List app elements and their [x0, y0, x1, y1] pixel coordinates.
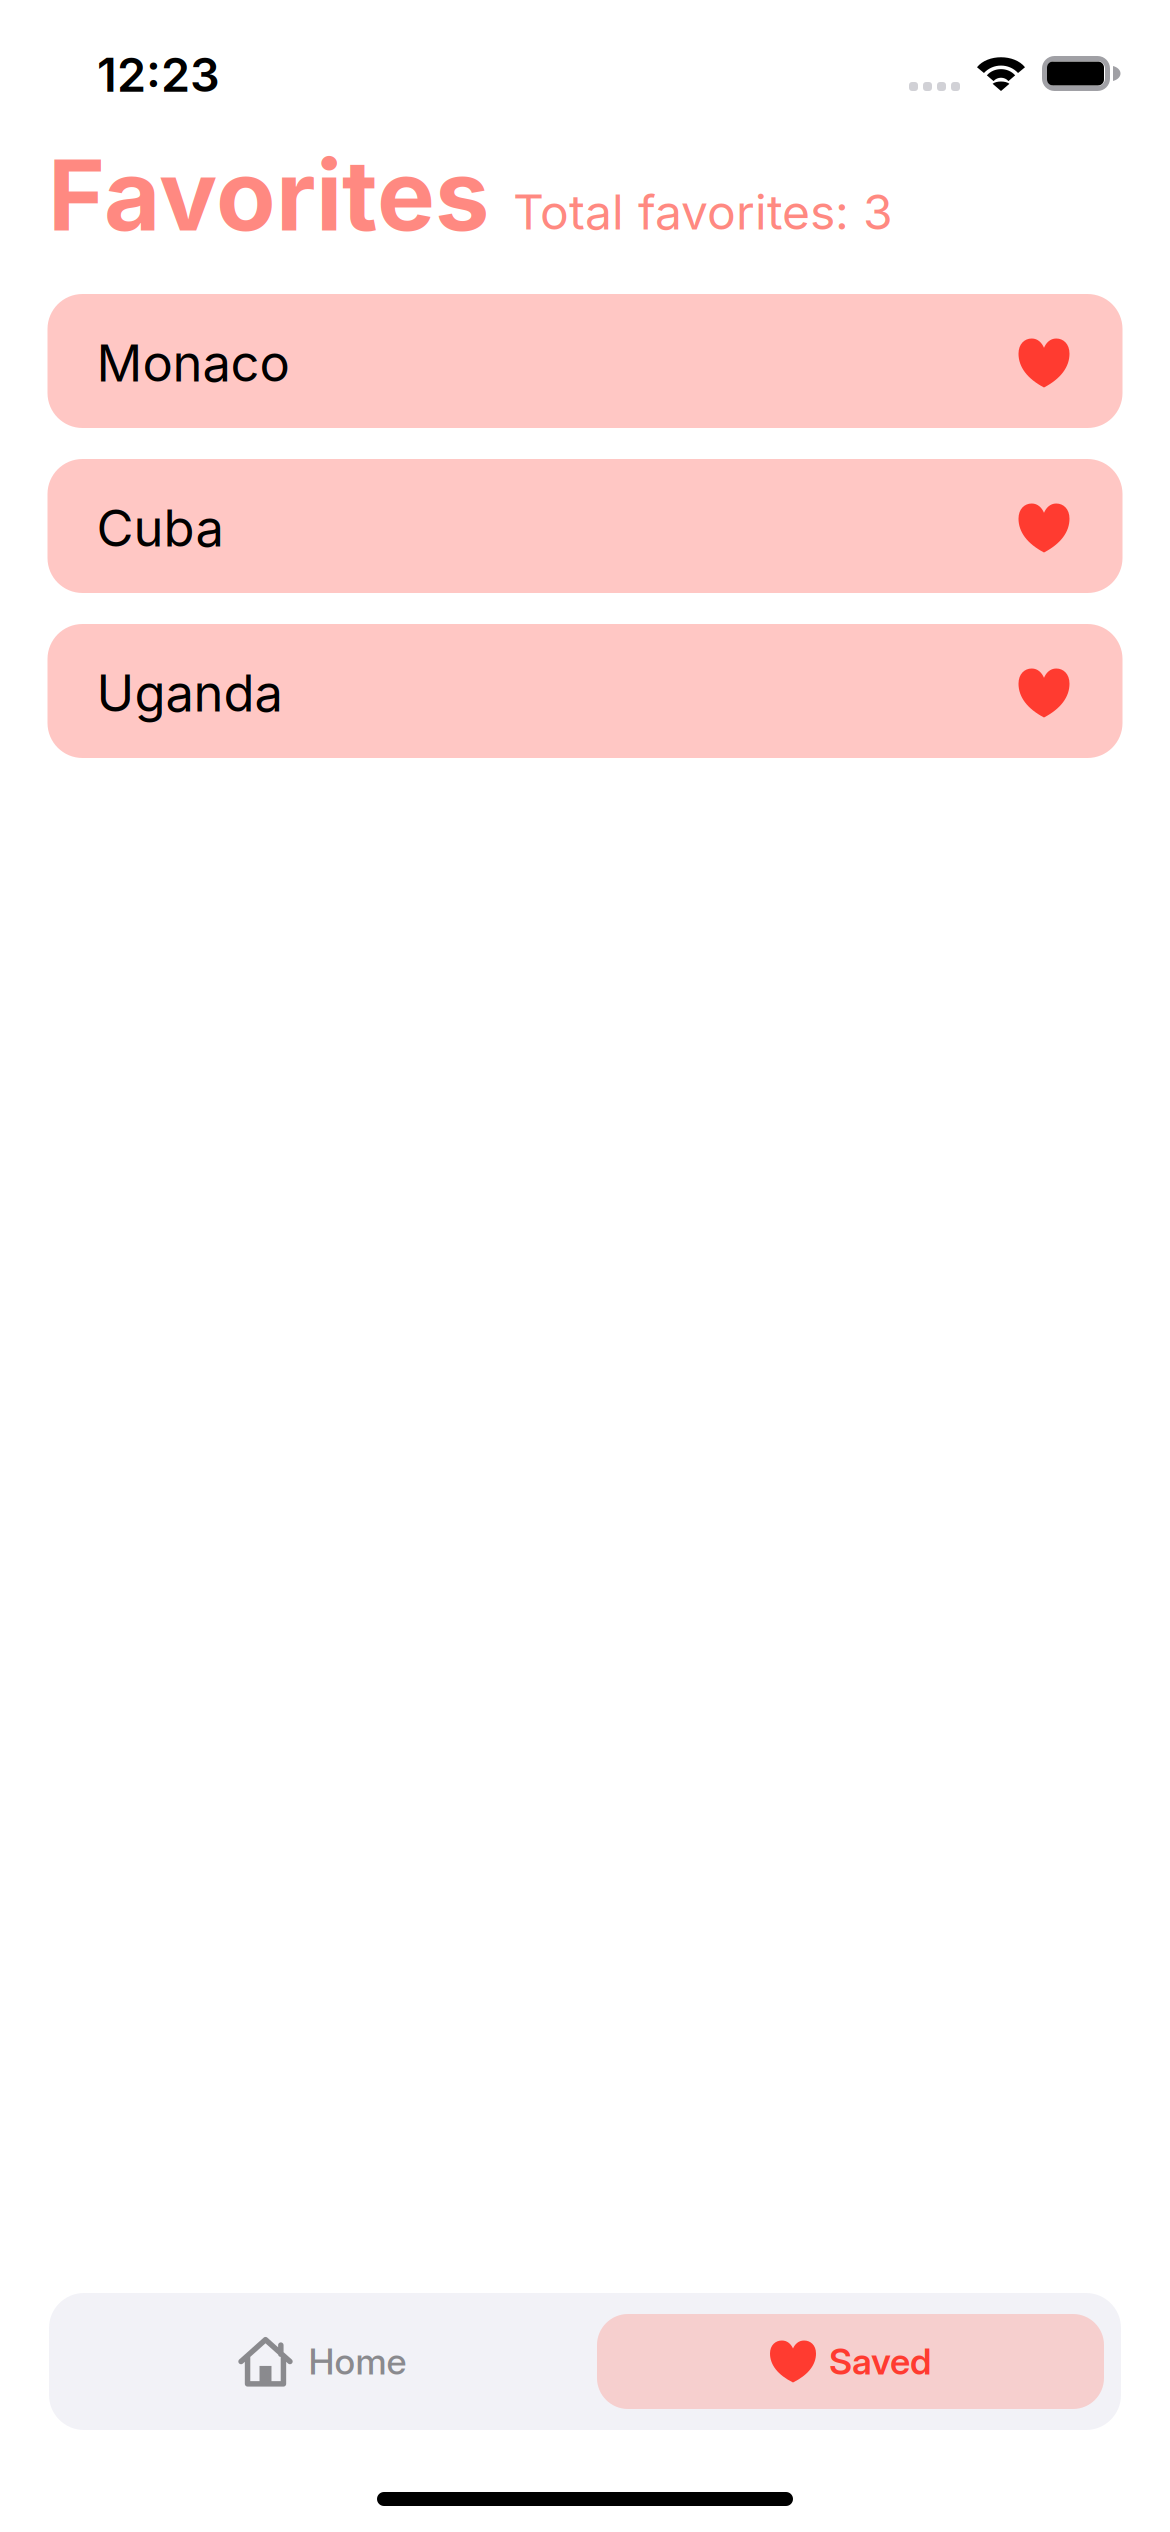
staticText: Uganda: [96, 662, 282, 724]
staticText: Cuba: [96, 497, 223, 559]
button[interactable]: Saved: [597, 2314, 1104, 2409]
staticText: Saved: [829, 2340, 931, 2383]
button[interactable]: Cuba: [47, 459, 1122, 593]
staticText: 12:23: [97, 46, 220, 103]
button[interactable]: Uganda: [47, 624, 1122, 758]
staticText: Favorites: [48, 136, 490, 254]
staticText: Home: [308, 2340, 406, 2383]
staticText: Monaco: [96, 332, 289, 394]
button[interactable]: Monaco: [47, 294, 1122, 428]
button[interactable]: Home: [49, 2293, 597, 2430]
staticText: Total favorites: 3: [513, 183, 893, 241]
